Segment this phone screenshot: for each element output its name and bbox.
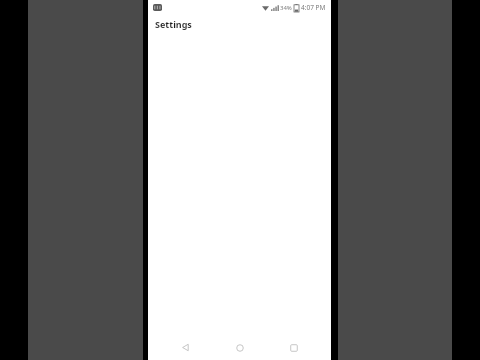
other: Notification xyxy=(153,4,162,11)
staticText: 4:07 PM xyxy=(301,3,326,12)
staticText: Settings xyxy=(155,18,192,30)
staticText: 34% xyxy=(280,4,292,12)
button[interactable]: Home xyxy=(223,335,257,360)
button[interactable]: Recent apps xyxy=(277,335,311,360)
button[interactable]: Back xyxy=(168,335,202,360)
